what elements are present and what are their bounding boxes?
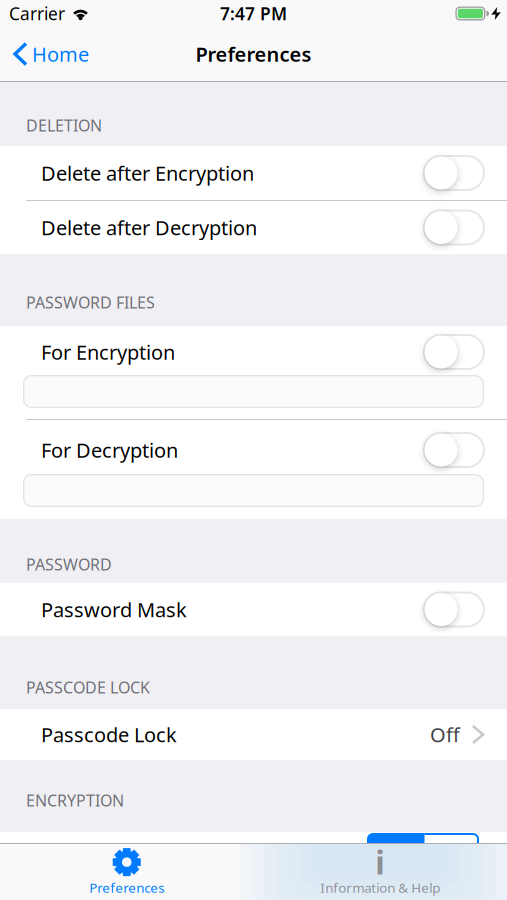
staticText: PASSWORD FILES <box>26 292 155 313</box>
staticText: i <box>375 841 385 883</box>
staticText: PASSWORD <box>26 554 112 575</box>
button[interactable]: Back to Home <box>15 41 89 67</box>
staticText: ENCRYPTION <box>26 790 124 811</box>
button[interactable]: Preferences <box>0 845 253 899</box>
button[interactable]: Encryption password file <box>0 375 507 408</box>
button[interactable]: Delete after Encryption <box>0 146 507 200</box>
staticText: PASSCODE LOCK <box>26 677 150 698</box>
staticText: Passcode Lock <box>41 721 177 748</box>
button[interactable]: Decryption password file <box>0 474 507 507</box>
staticText: For Decryption <box>41 437 178 463</box>
staticText: Carrier <box>9 2 65 25</box>
staticText: Off <box>430 721 460 748</box>
staticText: Delete after Decryption <box>41 214 257 241</box>
button[interactable]: Information & Help <box>253 845 507 899</box>
button[interactable]: Delete after Decryption <box>0 201 507 254</box>
staticText: Preferences <box>195 41 311 67</box>
button[interactable]: Passcode Lock <box>0 709 507 760</box>
button[interactable]: Toggle <box>423 591 485 627</box>
button[interactable]: Toggle <box>423 334 485 370</box>
staticText: DELETION <box>26 115 102 136</box>
staticText: 7:47 PM <box>220 2 287 25</box>
staticText: Information & Help <box>320 879 440 896</box>
button[interactable]: Toggle <box>423 432 485 468</box>
staticText: Password Mask <box>41 596 187 623</box>
staticText: Delete after Encryption <box>41 160 254 186</box>
staticText: For Encryption <box>41 339 175 365</box>
staticText: Preferences <box>89 879 164 896</box>
button[interactable]: Password Mask <box>0 583 507 636</box>
button[interactable]: Toggle <box>423 209 485 245</box>
button[interactable]: Toggle <box>423 155 485 191</box>
staticText: Home <box>32 41 89 67</box>
